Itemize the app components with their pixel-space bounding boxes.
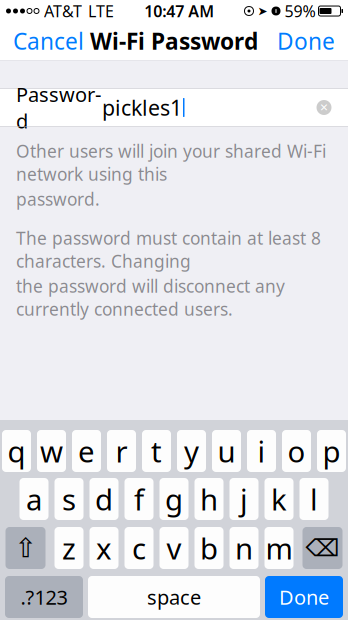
staticText: i — [257, 431, 265, 470]
staticText: Other users will join your shared Wi-Fi … — [16, 139, 326, 185]
button[interactable]: x — [89, 527, 118, 569]
button[interactable]: b — [194, 527, 223, 569]
staticText: h — [200, 479, 218, 518]
button[interactable]: i — [247, 430, 276, 472]
staticText: .?123 — [20, 584, 67, 610]
button[interactable]: l — [299, 478, 328, 520]
button[interactable]: Numbers and symbols — [5, 576, 83, 618]
staticText: a — [26, 479, 42, 518]
button[interactable]: m — [264, 527, 293, 569]
staticText: n — [235, 528, 253, 567]
staticText: s — [62, 479, 76, 518]
staticText: j — [240, 479, 248, 518]
staticText: g — [165, 479, 183, 518]
staticText: r — [115, 431, 127, 470]
button[interactable]: o — [282, 430, 311, 472]
staticText: space — [147, 584, 201, 610]
staticText: 10:47 AM — [144, 0, 214, 22]
staticText: l — [310, 479, 318, 518]
button[interactable]: Done — [267, 22, 345, 60]
staticText: o — [287, 431, 305, 470]
button[interactable]: h — [194, 478, 223, 520]
button[interactable]: c — [124, 527, 153, 569]
button[interactable]: s — [54, 478, 83, 520]
button[interactable]: n — [229, 527, 258, 569]
button[interactable]: y — [177, 430, 206, 472]
button[interactable]: space — [88, 576, 260, 618]
button[interactable]: Cancel — [3, 22, 94, 60]
button[interactable]: t — [142, 430, 171, 472]
staticText: q — [7, 431, 25, 470]
staticText: ⌫ — [305, 534, 339, 562]
staticText: t — [151, 431, 162, 470]
staticText: c — [132, 528, 146, 567]
staticText: ✕ — [319, 101, 328, 113]
staticText: b — [200, 528, 218, 567]
staticText: y — [184, 431, 199, 470]
button[interactable]: p — [317, 430, 346, 472]
button[interactable]: Shift — [5, 527, 45, 569]
staticText: z — [62, 528, 76, 567]
button[interactable]: g — [159, 478, 188, 520]
button[interactable]: Delete — [302, 527, 342, 569]
staticText: Cancel — [13, 26, 84, 56]
button[interactable]: v — [159, 527, 188, 569]
staticText: password. — [16, 187, 100, 210]
staticText: u — [217, 431, 235, 470]
button[interactable]: r — [107, 430, 136, 472]
staticText: the password will disconnect any current… — [16, 275, 285, 321]
button[interactable]: j — [229, 478, 258, 520]
staticText: f — [134, 479, 144, 518]
button[interactable]: a — [19, 478, 48, 520]
button[interactable]: q — [2, 430, 31, 472]
staticText: The password must contain at least 8 cha… — [16, 227, 321, 273]
staticText: Done — [277, 26, 335, 56]
button[interactable]: Clear text — [309, 92, 339, 122]
button[interactable]: e — [72, 430, 101, 472]
staticText: AT&T — [44, 0, 82, 22]
button[interactable]: z — [54, 527, 83, 569]
staticText: Wi-Fi Password — [90, 26, 258, 56]
staticText: LTE — [88, 0, 114, 22]
button[interactable]: w — [37, 430, 66, 472]
button[interactable]: k — [264, 478, 293, 520]
staticText: pickles1 — [102, 93, 182, 122]
staticText: p — [322, 431, 340, 470]
staticText: v — [166, 528, 181, 567]
staticText: d — [95, 479, 113, 518]
staticText: m — [265, 528, 292, 567]
button[interactable]: Done — [265, 576, 343, 618]
staticText: x — [96, 528, 112, 567]
staticText: 59% — [284, 0, 315, 22]
staticText: k — [271, 479, 287, 518]
button[interactable]: u — [212, 430, 241, 472]
staticText: Password — [16, 81, 101, 134]
staticText: w — [40, 431, 63, 470]
staticText: ➤ — [257, 4, 267, 18]
button[interactable]: f — [124, 478, 153, 520]
staticText: ⇧ — [14, 533, 36, 563]
button[interactable]: d — [89, 478, 118, 520]
staticText: Done — [279, 584, 329, 610]
staticText: e — [78, 431, 95, 470]
